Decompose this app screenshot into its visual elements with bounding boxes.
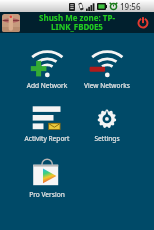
staticText: 19:56 — [120, 1, 141, 12]
button[interactable]: Activity Report — [16, 100, 78, 143]
button[interactable]: View Networks — [76, 44, 138, 90]
staticText: Shush Me zone: TP-LINK_FBD0E5 — [35, 12, 119, 33]
staticText: Add Network — [16, 81, 78, 90]
button[interactable]: Pro Version — [16, 154, 78, 199]
staticText: Activity Report — [16, 134, 78, 143]
button[interactable]: Power off — [136, 16, 150, 30]
button[interactable]: Settings — [76, 100, 138, 143]
staticText: Pro Version — [16, 190, 78, 199]
staticText: Settings — [76, 134, 138, 143]
button[interactable]: Shush Me — [2, 14, 20, 32]
staticText: View Networks — [76, 81, 138, 90]
button[interactable]: Add Network — [16, 44, 78, 90]
